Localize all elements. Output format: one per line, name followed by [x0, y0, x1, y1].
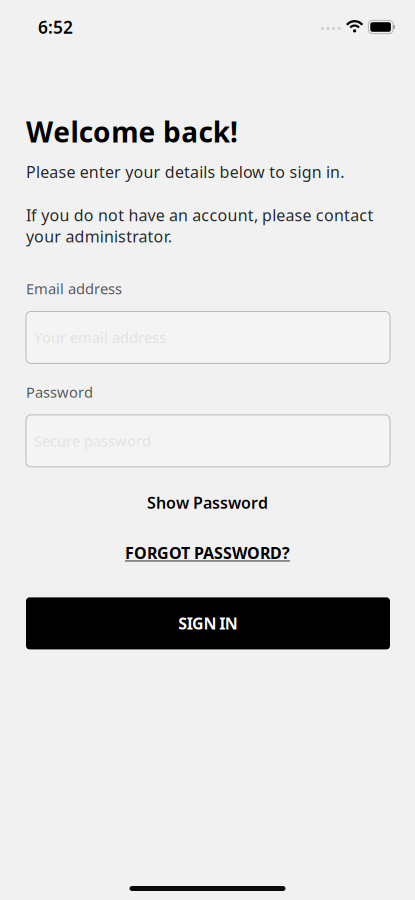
staticText: SIGN IN [178, 613, 238, 634]
staticText: 6:52 [38, 15, 73, 38]
button[interactable]: Secure password [26, 415, 390, 467]
staticText: If you do not have an account, please co… [26, 204, 373, 247]
staticText: Email address [26, 279, 122, 298]
staticText: Your email address [34, 328, 166, 347]
button[interactable]: Show Password [141, 489, 274, 516]
staticText: Welcome back! [26, 113, 238, 150]
staticText: Secure password [34, 431, 151, 451]
button[interactable]: Your email address [26, 311, 390, 363]
staticText: Show Password [147, 492, 268, 513]
staticText: FORGOT PASSWORD? [125, 542, 290, 563]
button[interactable]: FORGOT PASSWORD? [119, 539, 296, 566]
staticText: Password [26, 382, 93, 402]
button[interactable]: SIGN IN [26, 597, 390, 649]
staticText: Please enter your details below to sign … [26, 161, 344, 182]
